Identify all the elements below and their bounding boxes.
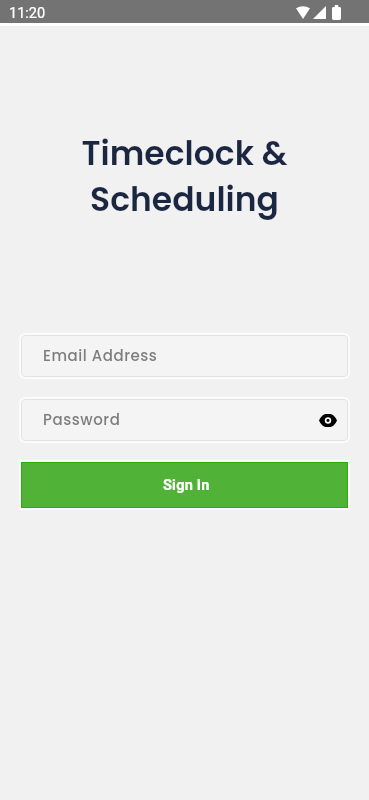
staticText: Password [43,409,121,430]
button[interactable]: Email Address [21,335,348,377]
button[interactable]: Sign In [22,463,347,507]
staticText: Email Address [43,345,158,366]
staticText: Sign In [163,477,210,494]
button[interactable]: Password [21,399,348,441]
staticText: 11:20 [9,5,46,22]
button[interactable]: Show password [316,408,340,432]
staticText: Timeclock & Scheduling [0,130,369,222]
